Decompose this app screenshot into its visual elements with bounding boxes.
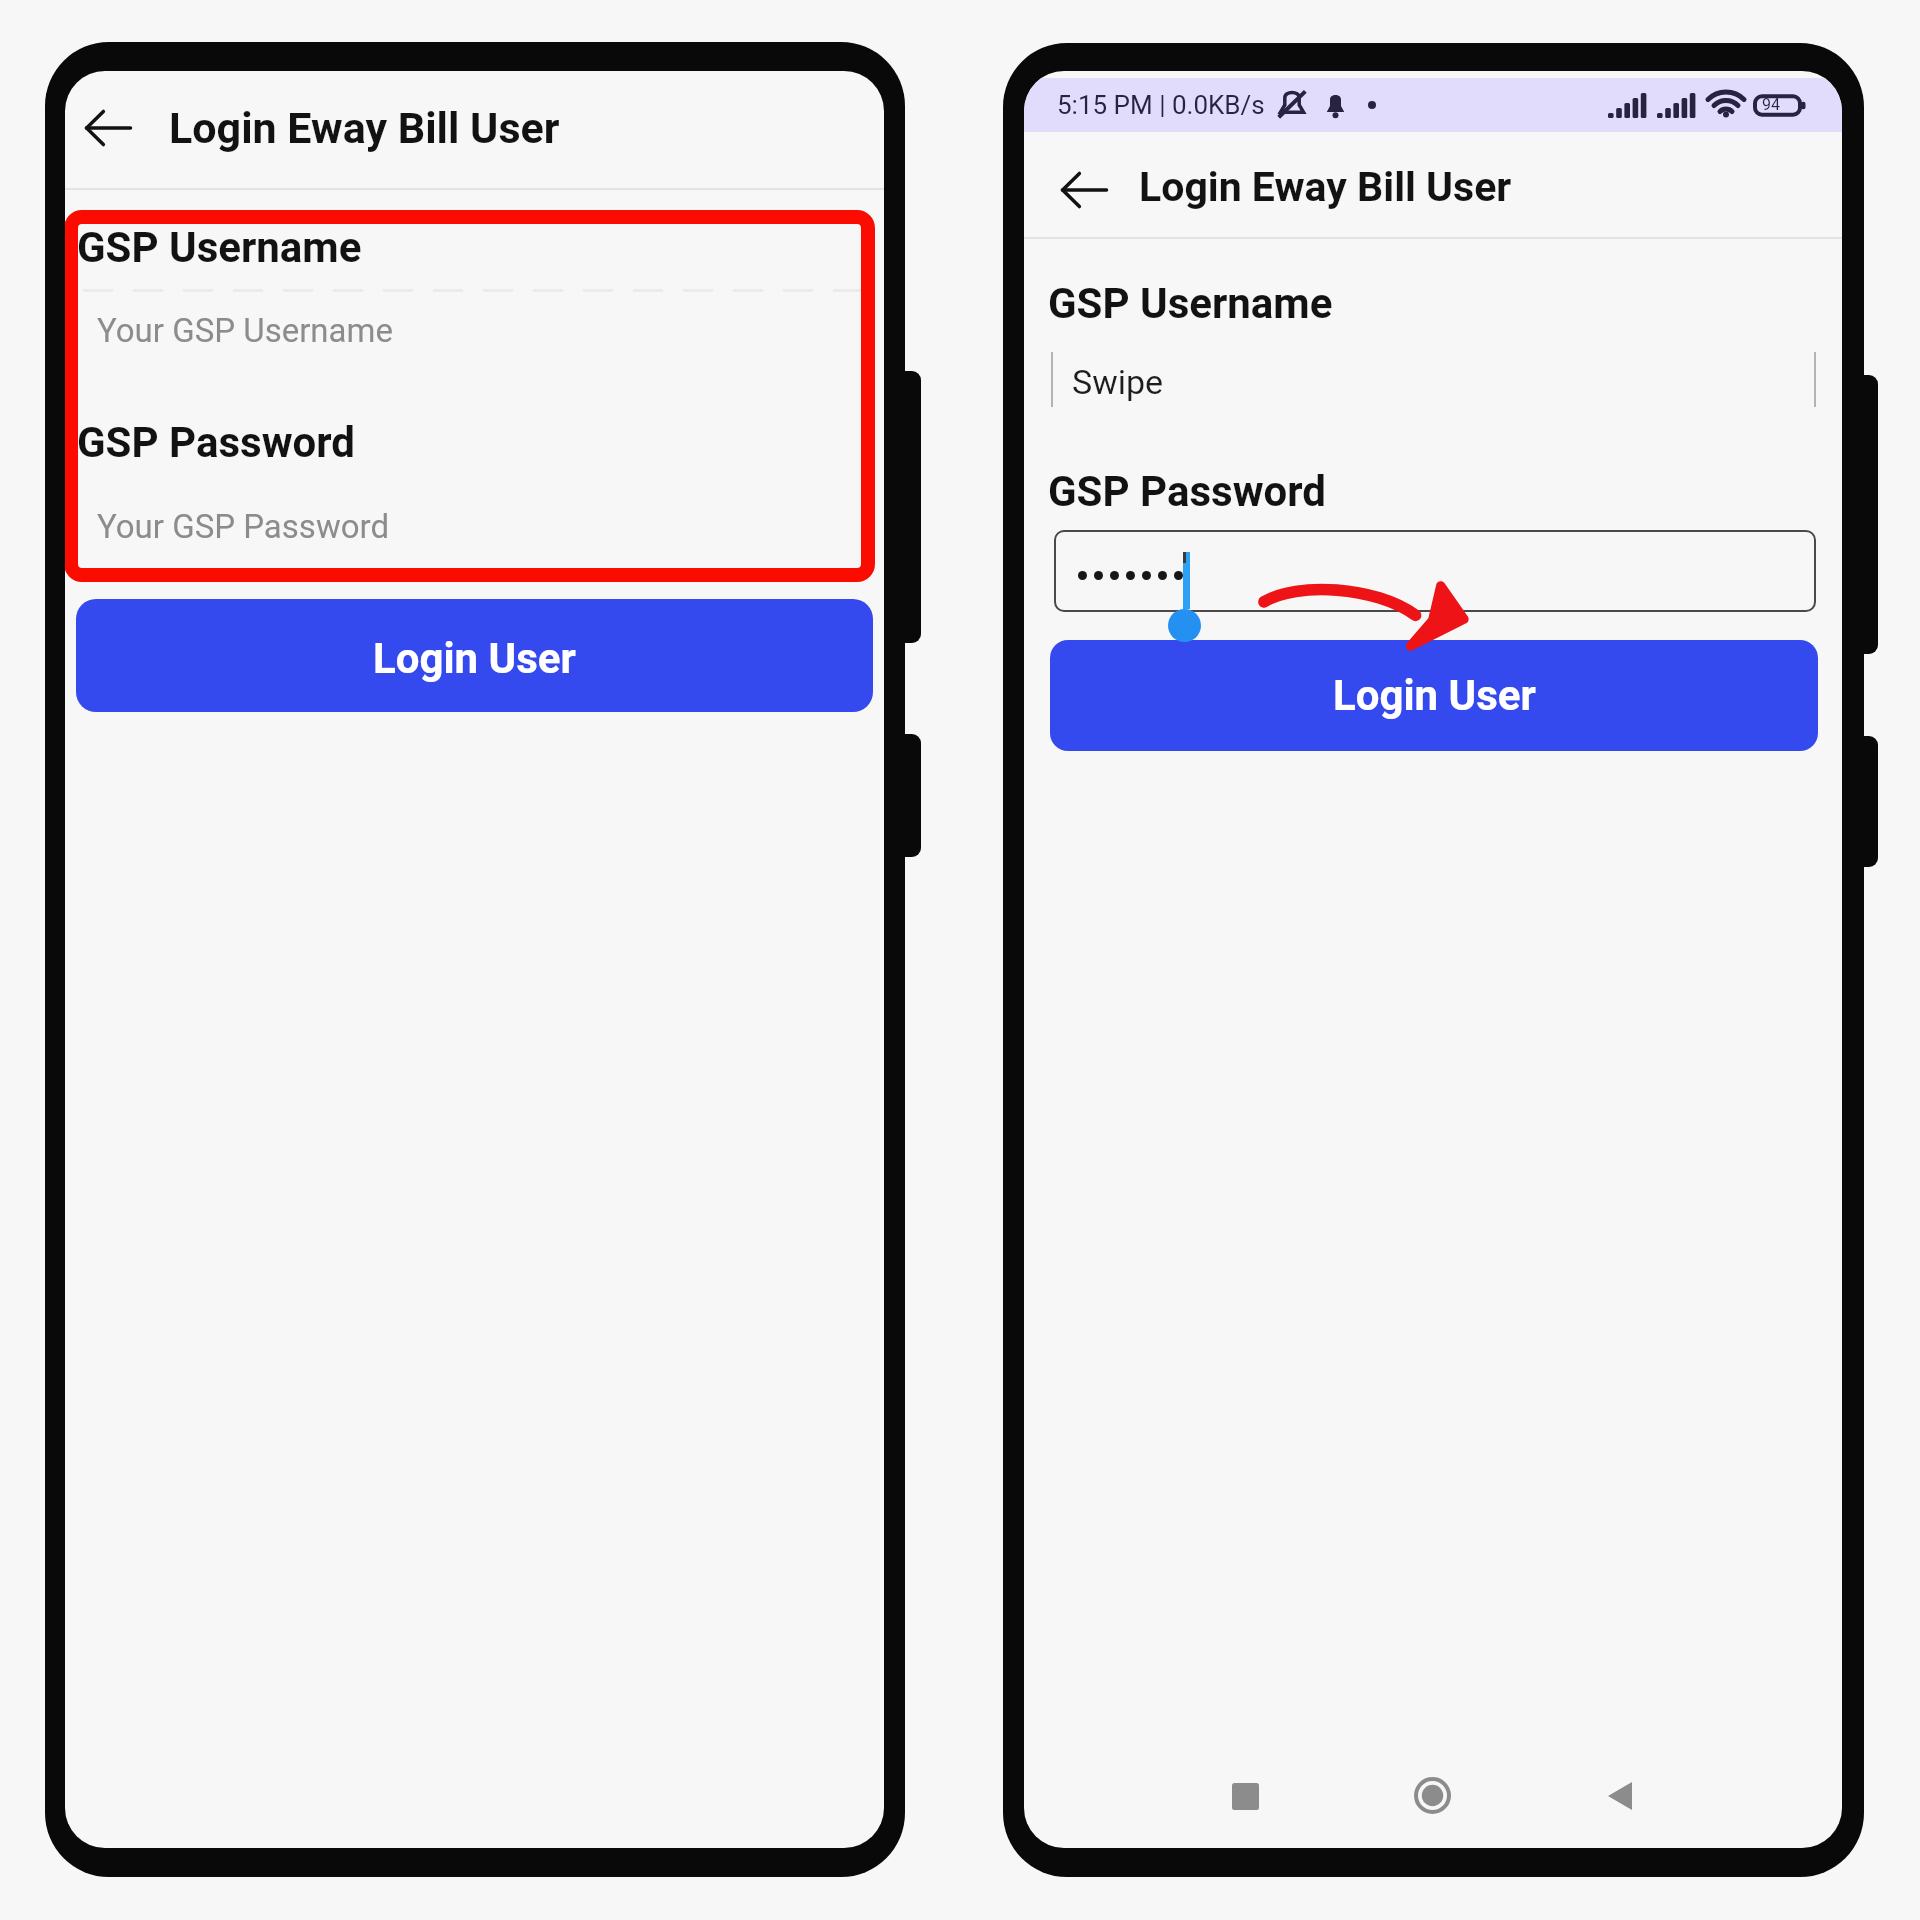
button[interactable]: Login User bbox=[76, 599, 873, 712]
staticText: GSP Username bbox=[77, 223, 362, 272]
button[interactable]: Navigate back bbox=[65, 84, 152, 172]
staticText: Login User bbox=[1333, 671, 1536, 720]
staticText: Login User bbox=[373, 634, 576, 683]
button[interactable]: GSP Password field bbox=[1054, 530, 1816, 612]
staticText: 5:15 PM | 0.0KB/s bbox=[1057, 90, 1265, 120]
staticText: 94 bbox=[1762, 95, 1780, 114]
staticText: GSP Username bbox=[1048, 279, 1333, 328]
button[interactable]: Home bbox=[1387, 1750, 1477, 1840]
button[interactable]: Back bbox=[1575, 1751, 1665, 1841]
staticText: Login Eway Bill User bbox=[169, 103, 560, 153]
button[interactable]: Login User bbox=[1050, 640, 1818, 751]
staticText: GSP Password bbox=[77, 418, 355, 467]
button[interactable]: Navigate back bbox=[1040, 146, 1128, 234]
staticText: Swipe bbox=[1072, 362, 1164, 402]
button[interactable]: Recent apps bbox=[1200, 1751, 1290, 1841]
staticText: Your GSP Username bbox=[97, 311, 393, 350]
staticText: Login Eway Bill User bbox=[1139, 163, 1512, 211]
staticText: GSP Password bbox=[1048, 467, 1326, 516]
staticText: Your GSP Password bbox=[97, 507, 389, 546]
button[interactable]: GSP Username field bbox=[1051, 352, 1816, 407]
